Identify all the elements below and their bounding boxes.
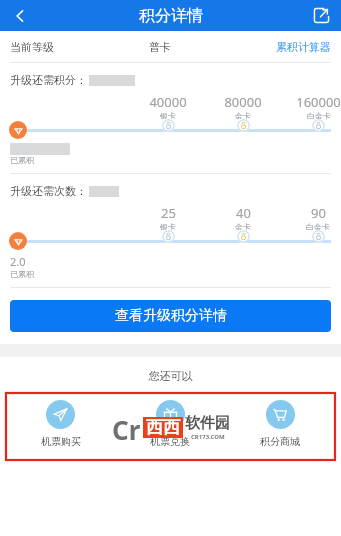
staticText: 升级还需次数： — [10, 184, 87, 198]
button[interactable]: 机票购买 — [6, 400, 115, 448]
staticText: 金卡 — [235, 222, 251, 230]
staticText: 160000 — [296, 93, 341, 111]
button[interactable]: 机票兑换 — [115, 400, 225, 448]
staticText: 机票兑换 — [150, 435, 190, 448]
staticText: 25 — [161, 204, 176, 222]
staticText: 90 — [311, 204, 326, 222]
staticText: 80000 — [224, 93, 262, 111]
staticText: 银卡 — [160, 111, 176, 119]
staticText: 您还可以 — [0, 369, 341, 383]
staticText: 机票购买 — [41, 435, 81, 448]
staticText: Cr — [112, 412, 141, 442]
staticText: 西西 — [146, 417, 180, 438]
button[interactable]: 查看升级积分详情 — [10, 300, 331, 332]
staticText: 积分详情 — [139, 6, 203, 26]
button[interactable]: 积分商城 — [225, 400, 335, 448]
button[interactable]: Back — [0, 0, 40, 31]
staticText: 银卡 — [160, 222, 176, 230]
staticText: 累积计算器 — [276, 40, 331, 54]
staticText: 40 — [236, 204, 251, 222]
button[interactable]: Share — [301, 0, 341, 31]
staticText: 升级还需积分： — [10, 73, 87, 87]
staticText: 当前等级 — [10, 40, 54, 54]
staticText: 2.0 — [10, 254, 26, 269]
staticText: 白金卡 — [307, 111, 331, 119]
staticText: 白金卡 — [306, 222, 330, 230]
staticText: 积分商城 — [260, 435, 300, 448]
staticText: 普卡 — [149, 40, 171, 54]
staticText: 软件园 — [185, 414, 230, 433]
button[interactable]: 累积计算器 — [276, 40, 331, 54]
staticText: CR173.COM — [191, 433, 225, 441]
staticText: 查看升级积分详情 — [115, 307, 227, 325]
staticText: 40000 — [149, 93, 187, 111]
staticText: 已累积 — [10, 155, 34, 165]
staticText: 金卡 — [235, 111, 251, 119]
staticText: 已累积 — [10, 269, 34, 279]
